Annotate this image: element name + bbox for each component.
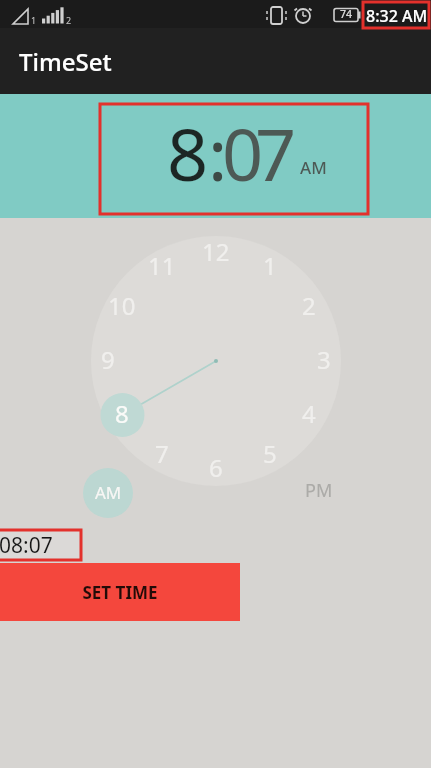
staticText: TimeSet	[19, 45, 112, 78]
button[interactable]: SET TIME	[0, 563, 240, 621]
button[interactable]: PM	[294, 465, 344, 515]
button[interactable]: 5	[248, 437, 292, 469]
staticText: 12	[202, 235, 230, 267]
staticText: 11	[148, 249, 176, 281]
staticText: 0	[222, 104, 264, 184]
button[interactable]: 3	[302, 343, 346, 375]
staticText: PM	[305, 478, 333, 503]
staticText: 2	[66, 14, 72, 26]
button[interactable]: 1	[248, 249, 292, 281]
staticText: 7	[255, 104, 297, 184]
staticText: 8	[167, 104, 209, 184]
staticText: 1	[263, 249, 277, 281]
button[interactable]: 4	[287, 397, 331, 429]
staticText: 8:32 AM	[366, 5, 428, 25]
staticText: 8	[115, 397, 129, 429]
staticText: 74	[340, 7, 353, 21]
staticText: AM	[300, 156, 327, 179]
staticText: 08:07	[0, 531, 53, 560]
staticText: 3	[317, 343, 331, 375]
button[interactable]: 08:07	[0, 531, 81, 560]
button[interactable]: 10	[100, 289, 144, 321]
staticText: AM	[95, 481, 122, 504]
staticText: :	[208, 104, 228, 184]
button[interactable]: 8	[100, 397, 144, 429]
button[interactable]: 9	[86, 343, 130, 375]
button[interactable]: 11	[140, 249, 184, 281]
button[interactable]: 6	[194, 451, 238, 483]
button[interactable]: 12	[194, 235, 238, 267]
staticText: 9	[101, 343, 115, 375]
staticText: 6	[209, 451, 223, 483]
button[interactable]: 7	[140, 437, 184, 469]
staticText: 1	[31, 14, 37, 26]
staticText: SET TIME	[82, 581, 158, 604]
staticText: 10	[108, 289, 136, 321]
staticText: 7	[155, 437, 169, 469]
staticText: 4	[302, 397, 316, 429]
button[interactable]: AM	[83, 467, 133, 517]
staticText: 5	[263, 437, 277, 469]
staticText: 2	[302, 289, 316, 321]
button[interactable]: 2	[287, 289, 331, 321]
